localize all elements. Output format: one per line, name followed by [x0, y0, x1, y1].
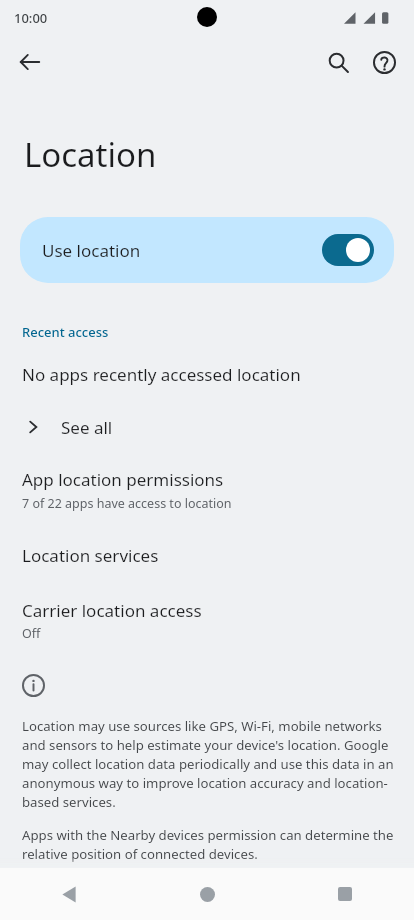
staticText: Carrier location access [22, 599, 202, 622]
button[interactable]: Recent apps [276, 868, 414, 920]
staticText: App location permissions [22, 468, 224, 491]
button[interactable]: Help [362, 40, 406, 84]
staticText: Apps with the Nearby devices permission … [22, 826, 400, 863]
staticText: Recent access [22, 323, 109, 341]
button[interactable]: Location services [0, 542, 414, 569]
staticText: Learn more [22, 871, 94, 889]
button[interactable]: Learn more [22, 871, 94, 889]
button[interactable]: Back [0, 868, 138, 920]
button[interactable]: Home [138, 868, 276, 920]
button[interactable]: See all [0, 410, 414, 444]
staticText: Location may use sources like GPS, Wi-Fi… [22, 717, 396, 811]
staticText: Location [24, 132, 157, 177]
staticText: See all [61, 416, 113, 439]
staticText: No apps recently accessed location [22, 363, 301, 386]
staticText: 10:00 [14, 9, 48, 27]
staticText: 7 of 22 apps have access to location [22, 495, 232, 512]
staticText: Use location [42, 239, 141, 262]
button[interactable]: Use location toggle [322, 234, 374, 266]
staticText: Location services [22, 544, 159, 567]
button[interactable]: App location permissions [0, 466, 414, 514]
button[interactable]: Back [8, 40, 52, 84]
staticText: Off [22, 625, 41, 642]
button[interactable]: Carrier location access [0, 597, 414, 644]
button[interactable]: Search [316, 40, 360, 84]
button[interactable]: Use location [20, 217, 394, 283]
